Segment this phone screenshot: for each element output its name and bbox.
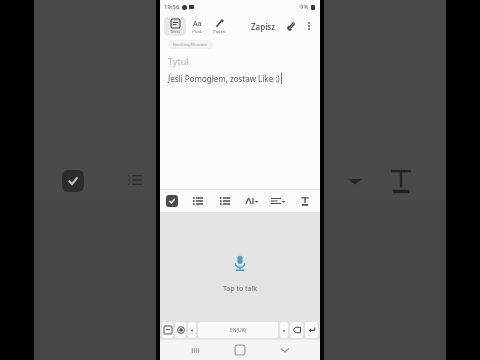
button[interactable]: Backspace — [290, 322, 303, 338]
button[interactable]: Settings — [175, 322, 186, 338]
staticText: Zapisz — [251, 21, 275, 32]
button[interactable]: Aa — [186, 17, 208, 36]
button[interactable]: Numbered list — [218, 194, 232, 208]
button[interactable]: Attach — [283, 18, 299, 34]
staticText: Jeśli Pomogłem, zostaw Like :) — [168, 73, 280, 84]
staticText: Niesklasyfikowane — [173, 42, 208, 47]
button[interactable]: Alignment — [271, 196, 286, 206]
button[interactable]: Symbols — [162, 322, 173, 338]
staticText: Pędzel — [213, 29, 226, 34]
staticText: Tytuł — [168, 55, 189, 67]
button[interactable]: Tap to talk — [227, 250, 253, 276]
staticText: Pisak — [192, 29, 202, 34]
button[interactable]: Text format — [298, 194, 312, 208]
button[interactable]: EN(UK) — [198, 322, 278, 338]
staticText: Tap to talk — [223, 284, 257, 294]
button[interactable]: Enter — [305, 322, 318, 338]
button[interactable]: Bulleted list — [191, 194, 205, 208]
button[interactable]: Zapisz — [248, 19, 278, 34]
button[interactable]: Period — [280, 322, 288, 338]
staticText: Aa — [193, 19, 202, 28]
button[interactable]: Tekst — [164, 17, 186, 36]
button[interactable]: Niesklasyfikowane — [168, 40, 213, 49]
button[interactable]: Recents — [185, 340, 205, 360]
button[interactable]: Pędzel — [208, 17, 230, 36]
button[interactable]: More options — [302, 19, 316, 33]
button[interactable]: Checkbox list — [166, 195, 178, 207]
button[interactable]: Text size — [244, 196, 259, 206]
staticText: EN(UK) — [230, 327, 247, 334]
staticText: 19:56 — [164, 3, 180, 11]
staticText: Tekst — [170, 29, 180, 34]
staticText: 9% — [300, 3, 309, 11]
button[interactable]: Back — [275, 340, 295, 360]
button[interactable]: Home — [230, 340, 250, 360]
button[interactable]: Comma — [188, 322, 196, 338]
